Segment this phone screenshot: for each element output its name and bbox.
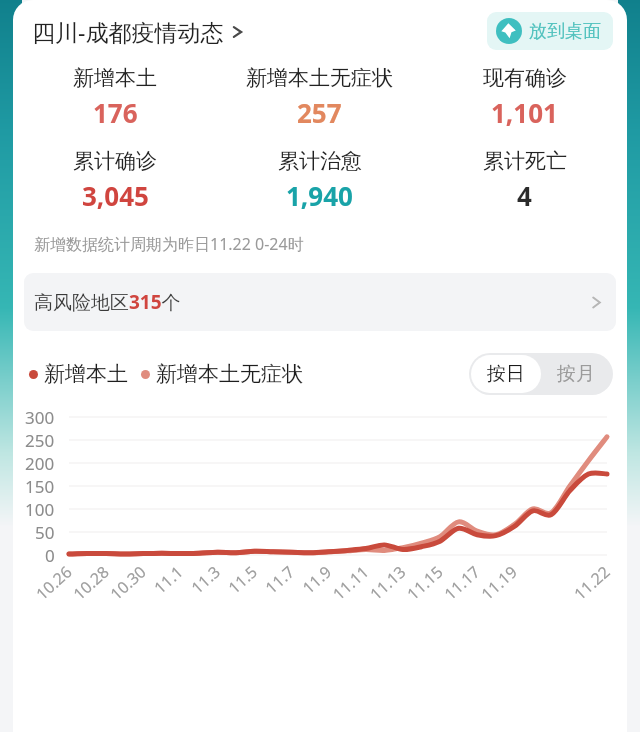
other: 添加到桌面 bbox=[496, 18, 522, 44]
staticText: 4 bbox=[517, 178, 532, 213]
staticText: 新增本土无症状 bbox=[156, 361, 303, 387]
button[interactable]: 累计死亡 bbox=[422, 148, 627, 213]
button[interactable]: 按日 bbox=[471, 355, 541, 393]
staticText: 1,101 bbox=[491, 95, 558, 130]
staticText: 257 bbox=[297, 95, 342, 130]
staticText: 现有确诊 bbox=[483, 65, 567, 91]
staticText: 176 bbox=[93, 95, 138, 130]
button[interactable]: 新增本土无症状 bbox=[217, 65, 422, 130]
staticText: 累计死亡 bbox=[483, 148, 567, 174]
button[interactable]: 四川-成都疫情动态 bbox=[32, 16, 244, 47]
staticText: 累计治愈 bbox=[278, 148, 362, 174]
button[interactable]: 高风险地区315个 bbox=[24, 273, 616, 331]
button[interactable]: 按月 bbox=[541, 355, 611, 393]
staticText: 新增数据统计周期为昨日11.22 0-24时 bbox=[34, 233, 304, 255]
button[interactable]: 累计治愈 bbox=[217, 148, 422, 213]
button[interactable]: 新增本土 bbox=[13, 65, 217, 130]
staticText: 新增本土 bbox=[44, 361, 128, 387]
button[interactable]: 添加到桌面 bbox=[487, 12, 613, 50]
button[interactable]: 现有确诊 bbox=[422, 65, 627, 130]
staticText: 新增本土无症状 bbox=[246, 65, 393, 91]
staticText: 按月 bbox=[557, 362, 595, 386]
staticText: 四川-成都疫情动态 bbox=[32, 16, 224, 47]
staticText: 3,045 bbox=[82, 178, 149, 213]
staticText: 累计确诊 bbox=[73, 148, 157, 174]
staticText: 新增本土 bbox=[73, 65, 157, 91]
staticText: 按日 bbox=[487, 362, 525, 386]
staticText: 1,940 bbox=[286, 178, 353, 213]
button[interactable]: 累计确诊 bbox=[13, 148, 217, 213]
staticText: 放到桌面 bbox=[529, 20, 601, 43]
staticText: 高风险地区315个 bbox=[34, 289, 181, 315]
